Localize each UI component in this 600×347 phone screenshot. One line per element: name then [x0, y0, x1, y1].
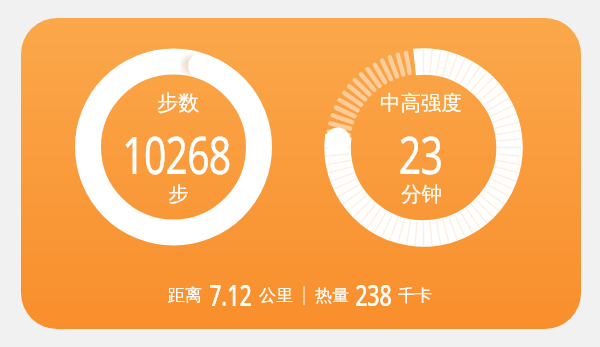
staticText: 距离 — [168, 285, 202, 306]
staticText: 步 — [168, 181, 189, 207]
staticText: 热量 — [315, 285, 349, 306]
staticText: 公里 — [259, 285, 293, 306]
staticText: 中高强度 — [380, 90, 462, 116]
staticText: 千卡 — [398, 285, 432, 306]
staticText: 238 — [355, 276, 392, 315]
staticText: 步数 — [157, 90, 199, 116]
staticText: 7.12 — [209, 276, 252, 315]
staticText: 分钟 — [401, 181, 442, 207]
staticText: 10268 — [122, 119, 231, 175]
staticText: 23 — [399, 119, 442, 175]
button[interactable] — [21, 18, 581, 329]
